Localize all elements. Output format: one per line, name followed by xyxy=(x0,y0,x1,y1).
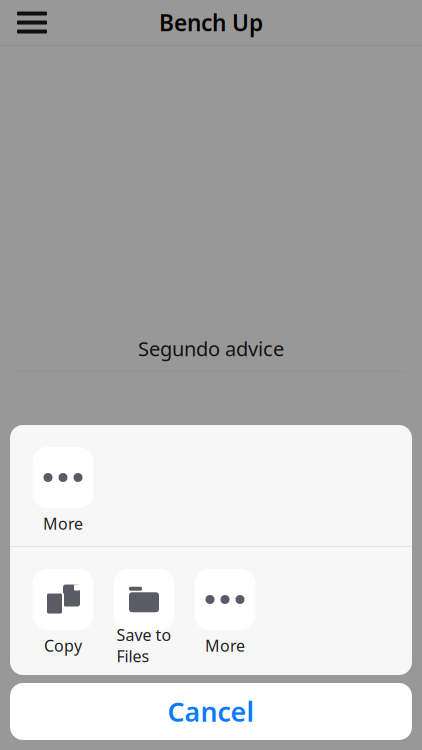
button[interactable]: Copy xyxy=(24,569,102,653)
button[interactable]: More xyxy=(24,447,102,531)
staticText: Bench Up xyxy=(159,7,263,37)
staticText: Cancel xyxy=(167,694,254,729)
staticText: More xyxy=(43,513,83,534)
button[interactable]: Save to Files xyxy=(105,569,183,653)
staticText: Segundo advice xyxy=(138,335,284,362)
staticText: Copy xyxy=(44,635,82,656)
button[interactable]: More xyxy=(186,569,264,653)
staticText: Save to Files xyxy=(116,624,171,667)
staticText: More xyxy=(205,635,245,656)
button[interactable]: Cancel xyxy=(10,683,412,740)
button[interactable]: Menu xyxy=(8,0,56,44)
